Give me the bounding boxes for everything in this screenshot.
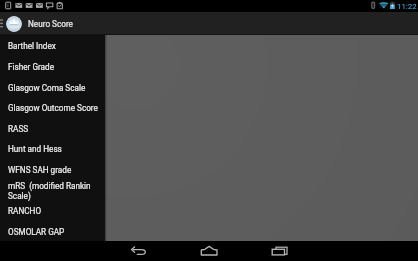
button[interactable]: Fisher Grade: [0, 56, 105, 77]
staticText: Fisher Grade: [8, 62, 55, 72]
staticText: RANCHO: [8, 206, 42, 216]
button[interactable]: Recent apps: [265, 241, 295, 261]
button[interactable]: RASS: [0, 118, 105, 139]
staticText: Barthel Index: [8, 41, 56, 51]
button[interactable]: Hunt and Hess: [0, 138, 105, 159]
staticText: mRS (modified Rankin Scale): [8, 181, 101, 201]
other: Menu: [0, 12, 3, 35]
staticText: 11:22: [397, 2, 417, 11]
button[interactable]: Back: [124, 241, 154, 261]
staticText: Neuro Score: [28, 19, 73, 29]
staticText: RASS: [8, 124, 29, 134]
staticText: Hunt and Hess: [8, 144, 62, 154]
button[interactable]: Home: [194, 241, 224, 261]
button[interactable]: RANCHO: [0, 200, 105, 221]
staticText: Glasgow Coma Scale: [8, 83, 86, 93]
button[interactable]: mRS (modified Rankin Scale): [0, 180, 105, 201]
button[interactable]: Glasgow Outcome Score: [0, 97, 105, 118]
button[interactable]: Glasgow Coma Scale: [0, 77, 105, 98]
staticText: OSMOLAR GAP: [8, 227, 65, 237]
button[interactable]: Neuro Score app icon: [6, 16, 22, 32]
button[interactable]: WFNS SAH grade: [0, 159, 105, 180]
staticText: Glasgow Outcome Score: [8, 103, 98, 113]
button[interactable]: Barthel Index: [0, 35, 105, 56]
staticText: WFNS SAH grade: [8, 165, 72, 175]
button[interactable]: OSMOLAR GAP: [0, 221, 105, 242]
